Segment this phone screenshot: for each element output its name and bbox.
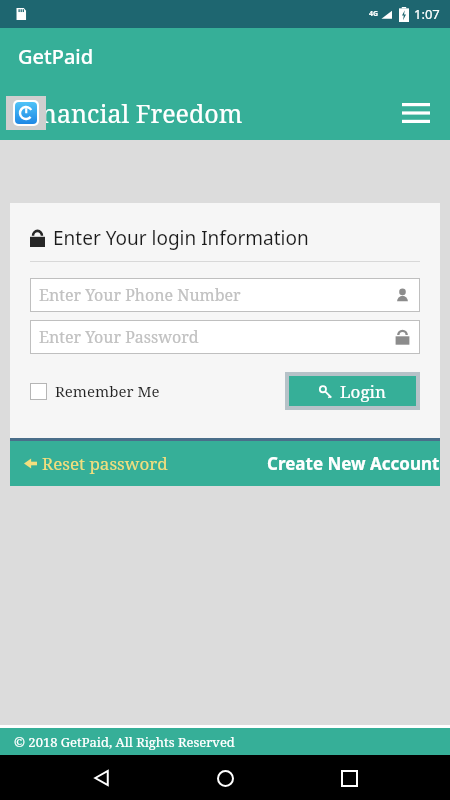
staticText: Login [340,380,386,403]
button[interactable]: Enter Your Password [30,320,420,354]
button[interactable]: Create New Account [267,452,440,475]
staticText: Enter Your login Information [53,225,309,251]
staticText: Enter Your Password [39,326,199,348]
staticText: Financial Freedom [18,96,243,130]
button[interactable]: Menu [396,93,436,133]
staticText: © 2018 GetPaid, All Rights Reserved [14,733,235,751]
button[interactable]: Remember Me [30,381,160,401]
staticText: Create New Account [267,452,440,475]
button[interactable]: Back [80,756,124,800]
staticText: Enter Your Phone Number [39,284,241,306]
staticText: 1:07 [414,5,440,23]
staticText: 4G [369,9,379,19]
staticText: Reset password [42,452,168,475]
button[interactable]: Login [289,376,416,406]
button[interactable]: Recent apps [327,756,371,800]
staticText: Remember Me [55,381,160,401]
staticText: GetPaid [18,43,94,70]
button[interactable]: Home [203,756,247,800]
button[interactable]: Enter Your Phone Number [30,278,420,312]
button[interactable]: Reset password [10,452,168,475]
